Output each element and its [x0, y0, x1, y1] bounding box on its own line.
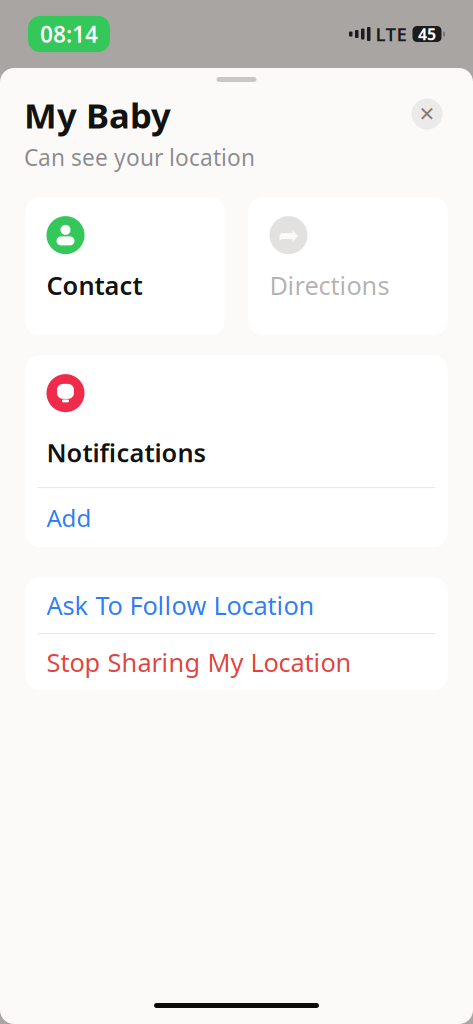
- button[interactable]: ➦: [248, 197, 447, 335]
- button[interactable]: Add: [25, 488, 447, 547]
- staticText: Can see your location: [24, 142, 255, 172]
- staticText: LTE: [375, 22, 406, 46]
- staticText: Ask To Follow Location: [46, 588, 314, 622]
- staticText: 08:14: [40, 19, 98, 49]
- staticText: 45: [418, 23, 436, 45]
- button[interactable]: Ask To Follow Location: [25, 577, 447, 633]
- staticText: Add: [46, 502, 91, 534]
- button[interactable]: Close: [405, 92, 449, 136]
- staticText: ➦: [278, 221, 299, 250]
- button[interactable]: Contact: [25, 197, 224, 335]
- button[interactable]: Stop Sharing My Location: [25, 634, 447, 690]
- staticText: ✕: [418, 103, 435, 125]
- staticText: My Baby: [24, 92, 171, 138]
- staticText: Contact: [46, 268, 142, 302]
- staticText: Notifications: [46, 435, 205, 469]
- staticText: Directions: [269, 268, 389, 302]
- staticText: Stop Sharing My Location: [46, 645, 351, 679]
